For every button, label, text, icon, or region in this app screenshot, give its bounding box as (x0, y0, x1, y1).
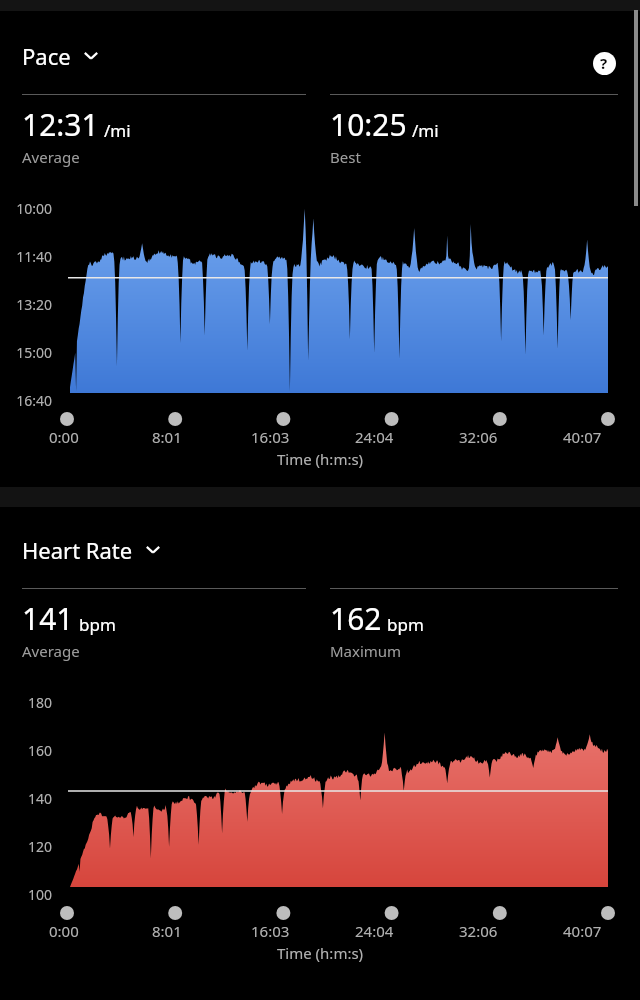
staticText: 32:06 (459, 921, 498, 941)
staticText: 0:00 (49, 921, 79, 941)
staticText: 0:00 (49, 427, 79, 447)
button[interactable]: 162 (330, 588, 618, 661)
staticText: Best (330, 147, 361, 167)
staticText: Maximum (330, 641, 402, 661)
staticText: 140 (0, 789, 52, 808)
staticText: /mi (412, 119, 439, 142)
button[interactable]: Help about pace (584, 43, 624, 83)
staticText: Average (22, 641, 80, 661)
staticText: bpm (79, 613, 116, 636)
staticText: bpm (387, 613, 424, 636)
staticText: 160 (0, 741, 52, 760)
staticText: 120 (0, 837, 52, 856)
staticText: 11:40 (0, 247, 52, 266)
staticText: 16:40 (0, 391, 52, 410)
staticText: Heart Rate (22, 535, 133, 565)
button[interactable]: 12:31 (22, 94, 306, 167)
staticText: 16:03 (251, 427, 290, 447)
staticText: Time (h:m:s) (277, 449, 364, 469)
staticText: 10:00 (0, 199, 52, 218)
staticText: 24:04 (355, 427, 394, 447)
staticText: Average (22, 147, 80, 167)
staticText: 100 (0, 885, 52, 904)
staticText: 10:25 (330, 104, 407, 145)
staticText: 12:31 (22, 104, 99, 145)
staticText: 16:03 (251, 921, 290, 941)
staticText: Time (h:m:s) (277, 943, 364, 963)
staticText: 32:06 (459, 427, 498, 447)
staticText: Pace (22, 41, 71, 71)
staticText: ? (600, 53, 608, 73)
staticText: 40:07 (563, 921, 602, 941)
staticText: 8:01 (152, 427, 182, 447)
staticText: 8:01 (152, 921, 182, 941)
button[interactable]: Pace (0, 39, 123, 73)
button[interactable]: 141 (22, 588, 306, 661)
staticText: 162 (330, 598, 382, 639)
staticText: 15:00 (0, 343, 52, 362)
staticText: 24:04 (355, 921, 394, 941)
staticText: 40:07 (563, 427, 602, 447)
staticText: 141 (22, 598, 74, 639)
staticText: 180 (0, 693, 52, 712)
button[interactable]: 10:25 (330, 94, 618, 167)
button[interactable]: Heart Rate (0, 533, 185, 567)
staticText: 13:20 (0, 295, 52, 314)
staticText: /mi (104, 119, 131, 142)
